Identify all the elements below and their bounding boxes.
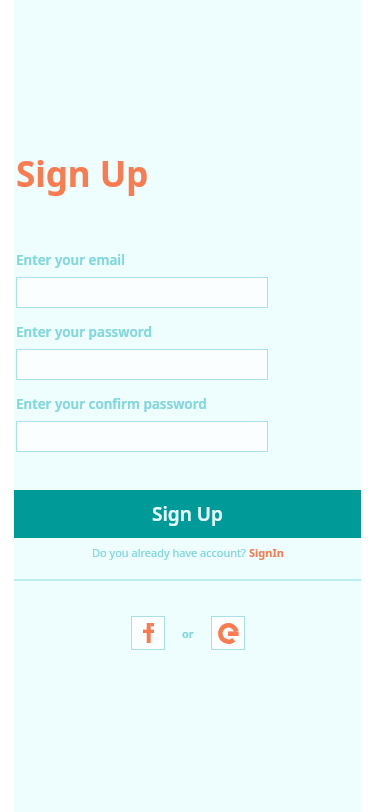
staticText: Enter your password [16, 323, 152, 341]
staticText: Sign Up [152, 501, 223, 527]
staticText: Enter your email [16, 251, 125, 269]
button[interactable]: Sign up with Facebook [131, 616, 165, 650]
staticText: Enter your confirm password [16, 395, 207, 413]
button[interactable]: SignIn [249, 545, 284, 560]
button[interactable] [16, 277, 268, 308]
staticText: Do you already have account? [92, 545, 249, 560]
button[interactable] [16, 421, 268, 452]
staticText: SignIn [249, 545, 284, 560]
button[interactable]: Sign up with Google [211, 616, 245, 650]
button[interactable]: Sign Up [14, 490, 361, 538]
staticText: Sign Up [16, 150, 149, 198]
staticText: or [182, 626, 194, 641]
button[interactable] [16, 349, 268, 380]
